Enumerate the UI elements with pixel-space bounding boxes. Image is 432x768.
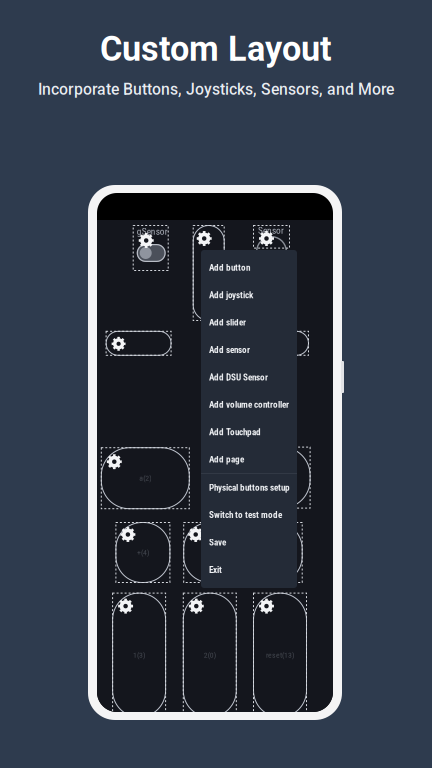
staticText: Sensor xyxy=(258,225,284,236)
staticText: a(2) xyxy=(139,474,151,483)
button[interactable]: Add slider xyxy=(201,309,297,336)
button[interactable]: Physical buttons setup xyxy=(201,474,297,501)
staticText: Save xyxy=(209,537,226,548)
button[interactable]: Add joystick xyxy=(201,281,297,309)
button[interactable]: Add button xyxy=(201,254,297,281)
staticText: Add button xyxy=(209,262,250,273)
staticText: Add joystick xyxy=(209,290,253,300)
staticText: Add slider xyxy=(209,317,246,328)
staticText: Incorporate Buttons, Joysticks, Sensors,… xyxy=(38,80,394,99)
button[interactable]: Add volume controller xyxy=(201,391,297,418)
staticText: gSensor xyxy=(137,226,168,237)
staticText: 1(3) xyxy=(133,651,145,660)
staticText: Add DSU Sensor xyxy=(209,372,268,383)
button[interactable]: Add Touchpad xyxy=(201,418,297,446)
button[interactable]: Save xyxy=(201,529,297,556)
button[interactable]: Switch to test mode xyxy=(201,501,297,529)
staticText: Add Touchpad xyxy=(209,427,261,437)
staticText: Switch to test mode xyxy=(209,510,282,520)
staticText: Physical buttons setup xyxy=(209,482,290,493)
staticText: Custom Layout xyxy=(100,29,332,69)
staticText: 2(0) xyxy=(204,651,216,660)
staticText: Exit xyxy=(209,564,222,575)
staticText: reset(13) xyxy=(266,651,294,660)
staticText: +(4) xyxy=(137,548,149,557)
button[interactable]: Add sensor xyxy=(201,336,297,364)
button[interactable]: Add DSU Sensor xyxy=(201,364,297,391)
staticText: Add volume controller xyxy=(209,399,289,410)
staticText: Add page xyxy=(209,454,244,465)
staticText: Add sensor xyxy=(209,344,250,355)
button[interactable]: Exit xyxy=(201,556,297,583)
button[interactable]: Add page xyxy=(201,446,297,473)
